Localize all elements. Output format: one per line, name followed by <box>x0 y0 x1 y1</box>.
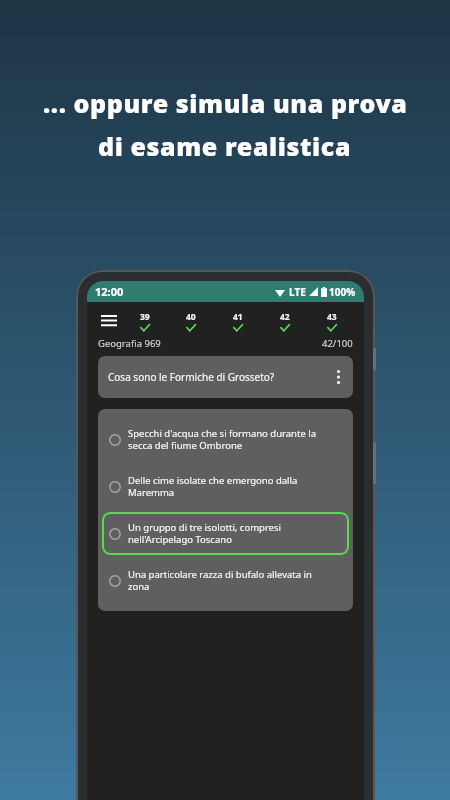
staticText: 42/100 <box>322 337 353 350</box>
button[interactable]: Menu <box>96 308 122 334</box>
staticText: Specchi d'acqua che si formano durante l… <box>128 427 341 452</box>
staticText: 42 <box>280 311 290 323</box>
button[interactable]: More options <box>327 366 349 388</box>
staticText: Una particolare razza di bufalo allevata… <box>128 568 341 593</box>
button[interactable]: Cosa sono le Formiche di Grosseto? <box>98 356 353 398</box>
staticText: LTE <box>289 285 306 299</box>
staticText: 43 <box>327 311 337 323</box>
button[interactable]: 41 <box>214 306 261 336</box>
staticText: 40 <box>186 311 196 323</box>
staticText: di esame realistica <box>98 129 352 163</box>
button[interactable]: 39 <box>122 306 168 336</box>
button[interactable]: 42 <box>261 306 308 336</box>
staticText: 100% <box>329 285 356 299</box>
staticText: Delle cime isolate che emergono dalla Ma… <box>128 474 341 499</box>
staticText: Geografia 969 <box>98 337 161 350</box>
staticText: Cosa sono le Formiche di Grosseto? <box>108 370 327 384</box>
button[interactable]: 40 <box>168 306 214 336</box>
button[interactable]: Delle cime isolate che emergono dalla Ma… <box>102 465 349 508</box>
staticText: 39 <box>140 311 150 323</box>
staticText: 12:00 <box>95 284 124 299</box>
button[interactable]: 43 <box>308 306 355 336</box>
button[interactable]: Un gruppo di tre isolotti, compresi nell… <box>102 512 349 555</box>
staticText: 41 <box>233 311 243 323</box>
button[interactable]: Specchi d'acqua che si formano durante l… <box>102 418 349 461</box>
staticText: Un gruppo di tre isolotti, compresi nell… <box>128 521 341 546</box>
button[interactable]: Una particolare razza di bufalo allevata… <box>102 559 349 602</box>
staticText: ... oppure simula una prova <box>43 86 408 120</box>
